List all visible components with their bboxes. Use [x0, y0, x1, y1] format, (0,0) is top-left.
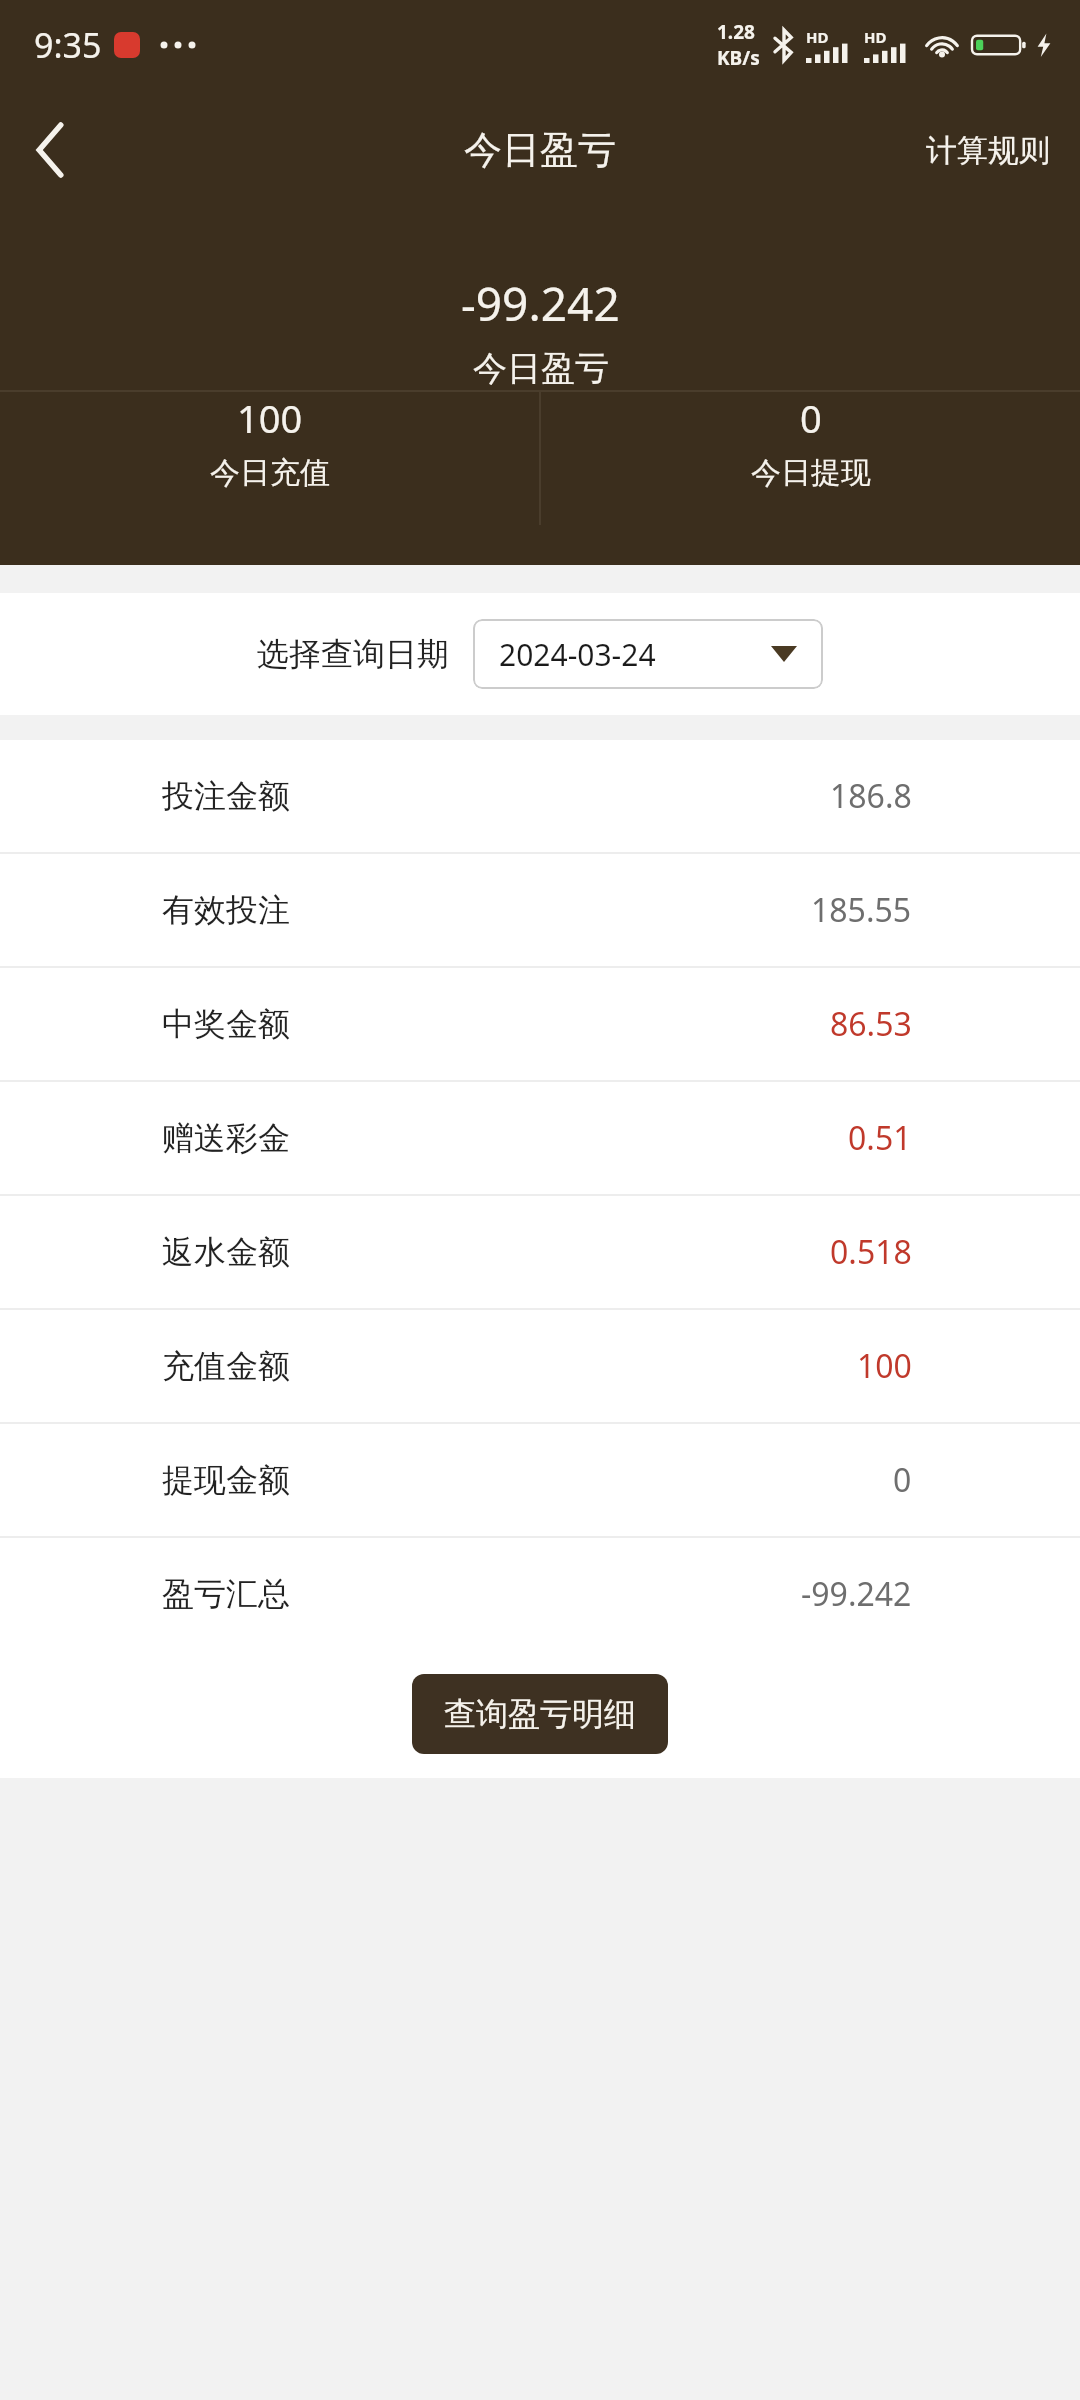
- staticText: -99.242: [801, 1572, 912, 1616]
- staticText: 查询盈亏明细: [444, 1694, 636, 1734]
- staticText: 0: [893, 1458, 912, 1502]
- staticText: 1.28: [717, 19, 755, 45]
- button[interactable]: 查询盈亏明细: [412, 1674, 668, 1754]
- staticText: 赠送彩金: [162, 1118, 290, 1158]
- staticText: 0.51: [848, 1116, 912, 1160]
- button[interactable]: 提现金额: [0, 1424, 1080, 1536]
- button[interactable]: 充值金额: [0, 1310, 1080, 1422]
- staticText: HD: [864, 27, 887, 47]
- staticText: 有效投注: [162, 890, 290, 930]
- staticText: -99.242: [461, 272, 620, 335]
- button[interactable]: 投注金额: [0, 740, 1080, 852]
- button[interactable]: 0: [541, 392, 1080, 492]
- staticText: 提现金额: [162, 1460, 290, 1500]
- staticText: 今日盈亏: [464, 126, 616, 174]
- staticText: 充值金额: [162, 1346, 290, 1386]
- staticText: 100: [857, 1344, 912, 1388]
- staticText: 2024-03-24: [499, 634, 656, 675]
- staticText: HD: [806, 27, 829, 47]
- staticText: 9:35: [34, 22, 102, 68]
- button[interactable]: 有效投注: [0, 854, 1080, 966]
- staticText: 今日盈亏: [473, 347, 609, 390]
- button[interactable]: 计算规则: [896, 107, 1080, 194]
- button[interactable]: 100: [0, 392, 539, 492]
- staticText: 今日提现: [751, 454, 871, 492]
- staticText: 100: [237, 392, 303, 444]
- staticText: 计算规则: [926, 131, 1050, 170]
- button[interactable]: 中奖金额: [0, 968, 1080, 1080]
- button[interactable]: 返水金额: [0, 1196, 1080, 1308]
- staticText: 选择查询日期: [257, 634, 449, 674]
- staticText: 今日充值: [210, 454, 330, 492]
- staticText: 中奖金额: [162, 1004, 290, 1044]
- staticText: KB/s: [717, 45, 760, 71]
- staticText: 投注金额: [162, 776, 290, 816]
- staticText: 返水金额: [162, 1232, 290, 1272]
- staticText: 0.518: [830, 1230, 912, 1274]
- staticText: 盈亏汇总: [162, 1574, 290, 1614]
- staticText: 186.8: [830, 774, 912, 818]
- button[interactable]: 盈亏汇总: [0, 1538, 1080, 1650]
- staticText: 0: [800, 392, 822, 444]
- staticText: 86.53: [830, 1002, 912, 1046]
- button[interactable]: 2024-03-24: [473, 619, 823, 689]
- staticText: 185.55: [811, 888, 912, 932]
- button[interactable]: 赠送彩金: [0, 1082, 1080, 1194]
- button[interactable]: 返回: [0, 98, 104, 202]
